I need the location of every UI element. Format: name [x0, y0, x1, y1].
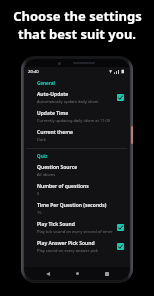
staticText: Question Source: [37, 164, 78, 171]
staticText: Update Time: [37, 110, 69, 117]
button[interactable]: Current theme: [24, 126, 130, 145]
staticText: Number of questions: [37, 183, 89, 190]
button[interactable]: Play Answer Pick Sound: [24, 237, 130, 256]
button[interactable]: Update Time: [24, 107, 130, 126]
staticText: Play Tick Sound: [37, 221, 75, 228]
staticText: that best suit you.: [18, 25, 136, 43]
button[interactable]: Toggle Play Tick Sound: [117, 224, 124, 231]
staticText: 15: [37, 210, 42, 215]
button[interactable]: Play Tick Sound: [24, 218, 130, 237]
staticText: 20:40: [28, 69, 39, 75]
staticText: All idioms: [37, 172, 56, 177]
staticText: Automatically update daily idiom: [37, 99, 99, 104]
button[interactable]: Toggle Play Answer Pick Sound: [117, 243, 124, 250]
staticText: Currently updating daily idiom at 11:00: [37, 118, 111, 123]
staticText: Quiz: [37, 153, 48, 159]
staticText: Play tick sound on every second of timer: [37, 229, 113, 234]
staticText: General: [37, 80, 55, 86]
staticText: Dark: [37, 137, 46, 142]
button[interactable]: Back: [41, 267, 54, 280]
staticText: Choose the settings: [13, 7, 142, 25]
staticText: 5: [37, 191, 40, 196]
button[interactable]: Auto-Update: [24, 88, 130, 107]
staticText: Time Per Question (seconds): [37, 202, 107, 209]
button[interactable]: Number of questions: [24, 180, 130, 199]
staticText: Current theme: [37, 129, 73, 136]
button[interactable]: Recent apps: [100, 267, 113, 280]
button[interactable]: Time Per Question (seconds): [24, 199, 130, 218]
button[interactable]: Toggle Auto-Update: [117, 94, 124, 101]
staticText: Auto-Update: [37, 91, 69, 98]
staticText: Play Answer Pick Sound: [37, 240, 95, 247]
button[interactable]: Question Source: [24, 161, 130, 180]
staticText: Play sound on every answer pick: [37, 248, 98, 253]
button[interactable]: Home: [71, 267, 84, 280]
